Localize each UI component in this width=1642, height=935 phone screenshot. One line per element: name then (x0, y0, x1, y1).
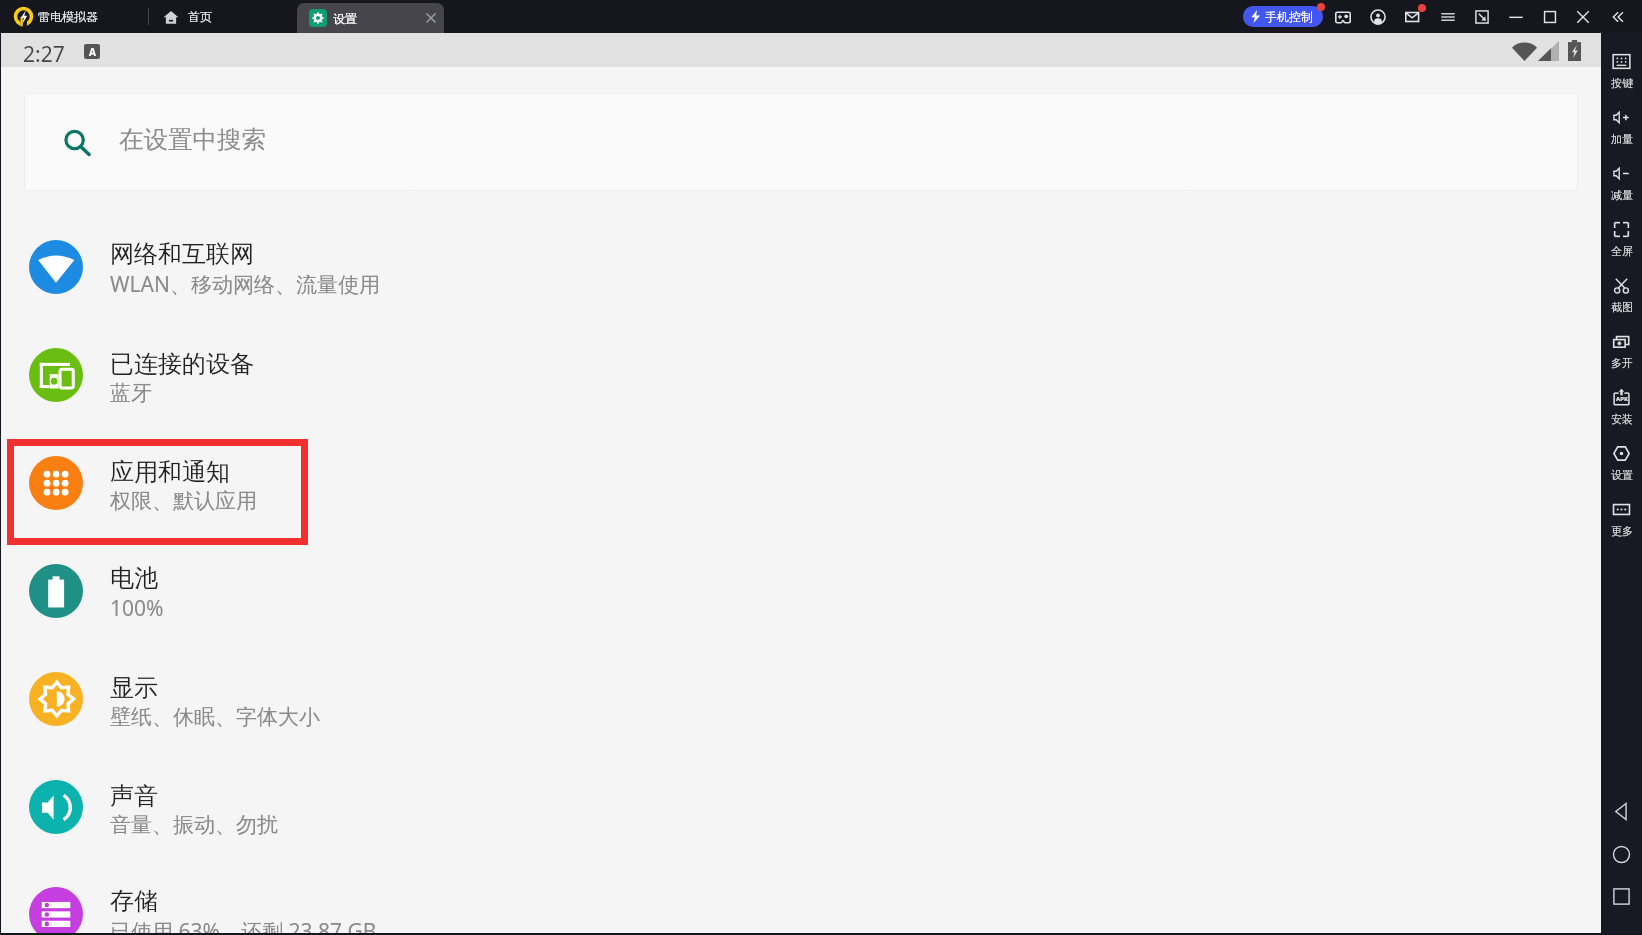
button[interactable]: APK (1607, 384, 1636, 432)
button[interactable]: 手机控制 (1243, 6, 1323, 27)
button[interactable]: Back (1612, 802, 1631, 821)
staticText: 设置 (333, 11, 357, 26)
staticText: 存储 (110, 886, 158, 916)
button[interactable]: Account (1370, 9, 1386, 25)
button[interactable]: Close (1575, 9, 1591, 25)
staticText: 显示 (110, 673, 158, 703)
staticText: 手机控制 (1265, 9, 1313, 24)
staticText: 已使用 63%、还剩 23.87 GB (110, 917, 377, 935)
button[interactable]: 已连接的设备 (1, 323, 1601, 431)
button[interactable]: Collapse (1613, 9, 1629, 25)
staticText: 按键 (1611, 76, 1633, 90)
staticText: 更多 (1611, 524, 1633, 538)
staticText: 全屏 (1611, 244, 1633, 258)
button[interactable]: Messages (1405, 9, 1421, 25)
staticText: 100% (110, 594, 164, 623)
button[interactable]: 截图 (1607, 272, 1636, 320)
button[interactable]: Recents (1612, 887, 1631, 906)
button[interactable]: 在设置中搜索 (24, 93, 1578, 191)
button[interactable]: 加量 (1607, 104, 1636, 152)
staticText: 设置 (1611, 468, 1633, 482)
button[interactable]: 电池 (1, 539, 1601, 647)
button[interactable]: 首页 (163, 2, 212, 31)
staticText: 加量 (1611, 132, 1633, 146)
button[interactable]: 存储 (1, 863, 1601, 935)
button[interactable]: Minimize (1508, 9, 1524, 25)
staticText: 雷电模拟器 (38, 9, 98, 24)
button[interactable]: 设置 (297, 3, 444, 33)
staticText: 多开 (1611, 356, 1633, 370)
button[interactable]: 显示 (1, 647, 1601, 755)
staticText: 在设置中搜索 (119, 124, 266, 155)
staticText: 首页 (188, 9, 212, 24)
staticText: 电池 (110, 563, 158, 593)
button[interactable]: Restore (1474, 9, 1490, 25)
staticText: 2:27 (23, 40, 65, 69)
button[interactable]: Home (1612, 845, 1631, 864)
staticText: 声音 (110, 781, 158, 811)
staticText: 网络和互联网 (110, 239, 254, 269)
staticText: 音量、振动、勿扰 (110, 812, 278, 838)
button[interactable]: 按键 (1607, 48, 1636, 96)
button[interactable]: Game center (1335, 9, 1351, 25)
button[interactable]: 多开 (1607, 328, 1636, 376)
button[interactable]: Menu (1440, 9, 1456, 25)
staticText: A (89, 45, 96, 59)
button[interactable]: 更多 (1607, 496, 1636, 544)
staticText: 安装 (1611, 412, 1633, 426)
button[interactable]: 网络和互联网 (1, 215, 1601, 323)
staticText: APK (1616, 395, 1628, 403)
staticText: 已连接的设备 (110, 349, 254, 379)
staticText: 壁纸、休眠、字体大小 (110, 704, 320, 730)
button[interactable]: 全屏 (1607, 216, 1636, 264)
staticText: 权限、默认应用 (110, 488, 257, 514)
staticText: 减量 (1611, 188, 1633, 202)
button[interactable]: Maximize (1542, 9, 1558, 25)
staticText: 截图 (1611, 300, 1633, 314)
staticText: 蓝牙 (110, 380, 152, 406)
button[interactable]: 声音 (1, 755, 1601, 863)
button[interactable]: Close tab (425, 12, 437, 24)
button[interactable]: 应用和通知 (1, 431, 1601, 539)
button[interactable]: 减量 (1607, 160, 1636, 208)
staticText: 应用和通知 (110, 457, 230, 487)
staticText: WLAN、移动网络、流量使用 (110, 270, 380, 299)
button[interactable]: 设置 (1607, 440, 1636, 488)
